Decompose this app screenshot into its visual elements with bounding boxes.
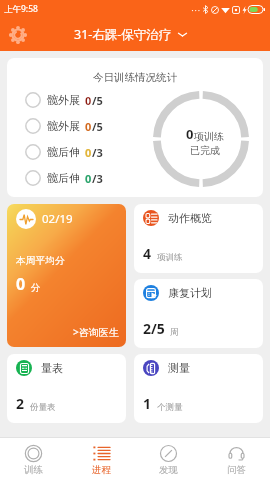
staticText: 0 bbox=[85, 171, 92, 186]
staticText: 发现 bbox=[159, 464, 178, 476]
button[interactable]: 量表 bbox=[7, 354, 126, 423]
staticText: 已完成 bbox=[190, 144, 220, 157]
button[interactable]: 问答 bbox=[203, 443, 270, 476]
button[interactable]: 发现 bbox=[135, 443, 202, 476]
staticText: 进程 bbox=[92, 464, 111, 476]
staticText: 髋外展 bbox=[47, 119, 80, 133]
staticText: 本周平均分 bbox=[16, 255, 65, 267]
staticText: 髋后伸 bbox=[47, 171, 80, 185]
button[interactable]: 31-右踝-保守治疗 bbox=[74, 26, 187, 43]
staticText: 0 bbox=[16, 273, 26, 295]
staticText: >咨询医生 bbox=[73, 325, 119, 339]
staticText: 02/19 bbox=[42, 211, 73, 227]
staticText: /5 bbox=[92, 119, 103, 134]
staticText: 量表 bbox=[41, 361, 63, 375]
staticText: 项训练 bbox=[194, 130, 224, 143]
staticText: 动作概览 bbox=[168, 211, 212, 225]
staticText: 问答 bbox=[227, 464, 246, 476]
staticText: 康复计划 bbox=[168, 286, 212, 300]
button[interactable]: 测量 bbox=[134, 354, 263, 423]
staticText: 4 bbox=[143, 244, 152, 263]
staticText: 0 bbox=[85, 145, 92, 160]
staticText: /5 bbox=[92, 93, 103, 108]
staticText: 份量表 bbox=[30, 402, 56, 413]
staticText: 0 bbox=[186, 125, 194, 143]
button[interactable]: 今日训练情况统计 bbox=[7, 58, 263, 197]
button[interactable]: 动作概览 bbox=[134, 204, 263, 273]
staticText: 今日训练情况统计 bbox=[93, 71, 177, 84]
staticText: 31-右踝-保守治疗 bbox=[74, 26, 172, 43]
button[interactable]: Settings bbox=[5, 22, 31, 48]
button[interactable]: 训练 bbox=[0, 443, 67, 476]
staticText: 上午9:58 bbox=[4, 3, 38, 15]
button[interactable]: 进程 bbox=[68, 443, 135, 476]
button[interactable]: 康复计划 bbox=[134, 279, 263, 348]
staticText: 0 bbox=[85, 93, 92, 108]
staticText: 周 bbox=[170, 327, 179, 338]
staticText: 训练 bbox=[24, 464, 43, 476]
staticText: 1 bbox=[143, 394, 152, 413]
staticText: 髋外展 bbox=[47, 93, 80, 107]
staticText: 2/5 bbox=[143, 319, 165, 338]
staticText: 个测量 bbox=[157, 402, 183, 413]
staticText: /3 bbox=[92, 171, 103, 186]
staticText: 2 bbox=[16, 394, 25, 413]
button[interactable]: 02/19 bbox=[7, 204, 126, 347]
staticText: 测量 bbox=[168, 361, 190, 375]
staticText: 0 bbox=[85, 119, 92, 134]
staticText: 分 bbox=[31, 282, 41, 294]
staticText: /3 bbox=[92, 145, 103, 160]
staticText: 髋后伸 bbox=[47, 145, 80, 159]
staticText: 项训练 bbox=[157, 252, 183, 263]
